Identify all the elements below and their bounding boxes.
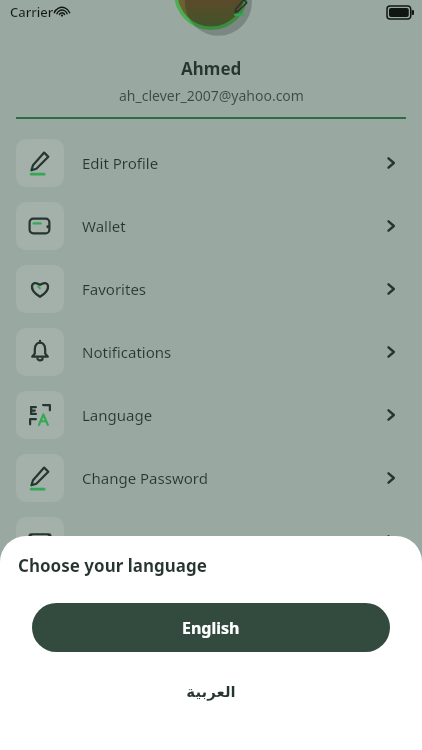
- staticText: Edit Profile: [82, 153, 159, 173]
- staticText: Ahmed: [181, 57, 242, 80]
- staticText: English: [182, 617, 240, 639]
- button[interactable]: Change Password: [0, 446, 422, 509]
- staticText: Wallet: [82, 216, 126, 236]
- staticText: ah_clever_2007@yahoo.com: [119, 86, 304, 105]
- button[interactable]: Notifications: [0, 320, 422, 383]
- button[interactable]: Edit Profile: [0, 131, 422, 194]
- staticText: Choose your language: [18, 554, 207, 577]
- button[interactable]: English: [32, 603, 390, 652]
- staticText: Change Password: [82, 468, 208, 488]
- staticText: Contact Us: [82, 531, 159, 551]
- staticText: 5:13 PM: [186, 3, 236, 21]
- staticText: العربية: [186, 683, 236, 700]
- staticText: Favorites: [82, 279, 147, 299]
- staticText: Language: [82, 405, 153, 425]
- button[interactable]: Contact Us: [0, 509, 422, 572]
- button[interactable]: Edit photo: [230, 0, 252, 18]
- button[interactable]: العربية: [131, 674, 291, 708]
- button[interactable]: Favorites: [0, 257, 422, 320]
- staticText: Notifications: [82, 342, 172, 362]
- button[interactable]: Wallet: [0, 194, 422, 257]
- button[interactable]: Language: [0, 383, 422, 446]
- staticText: Carrier: [10, 3, 54, 21]
